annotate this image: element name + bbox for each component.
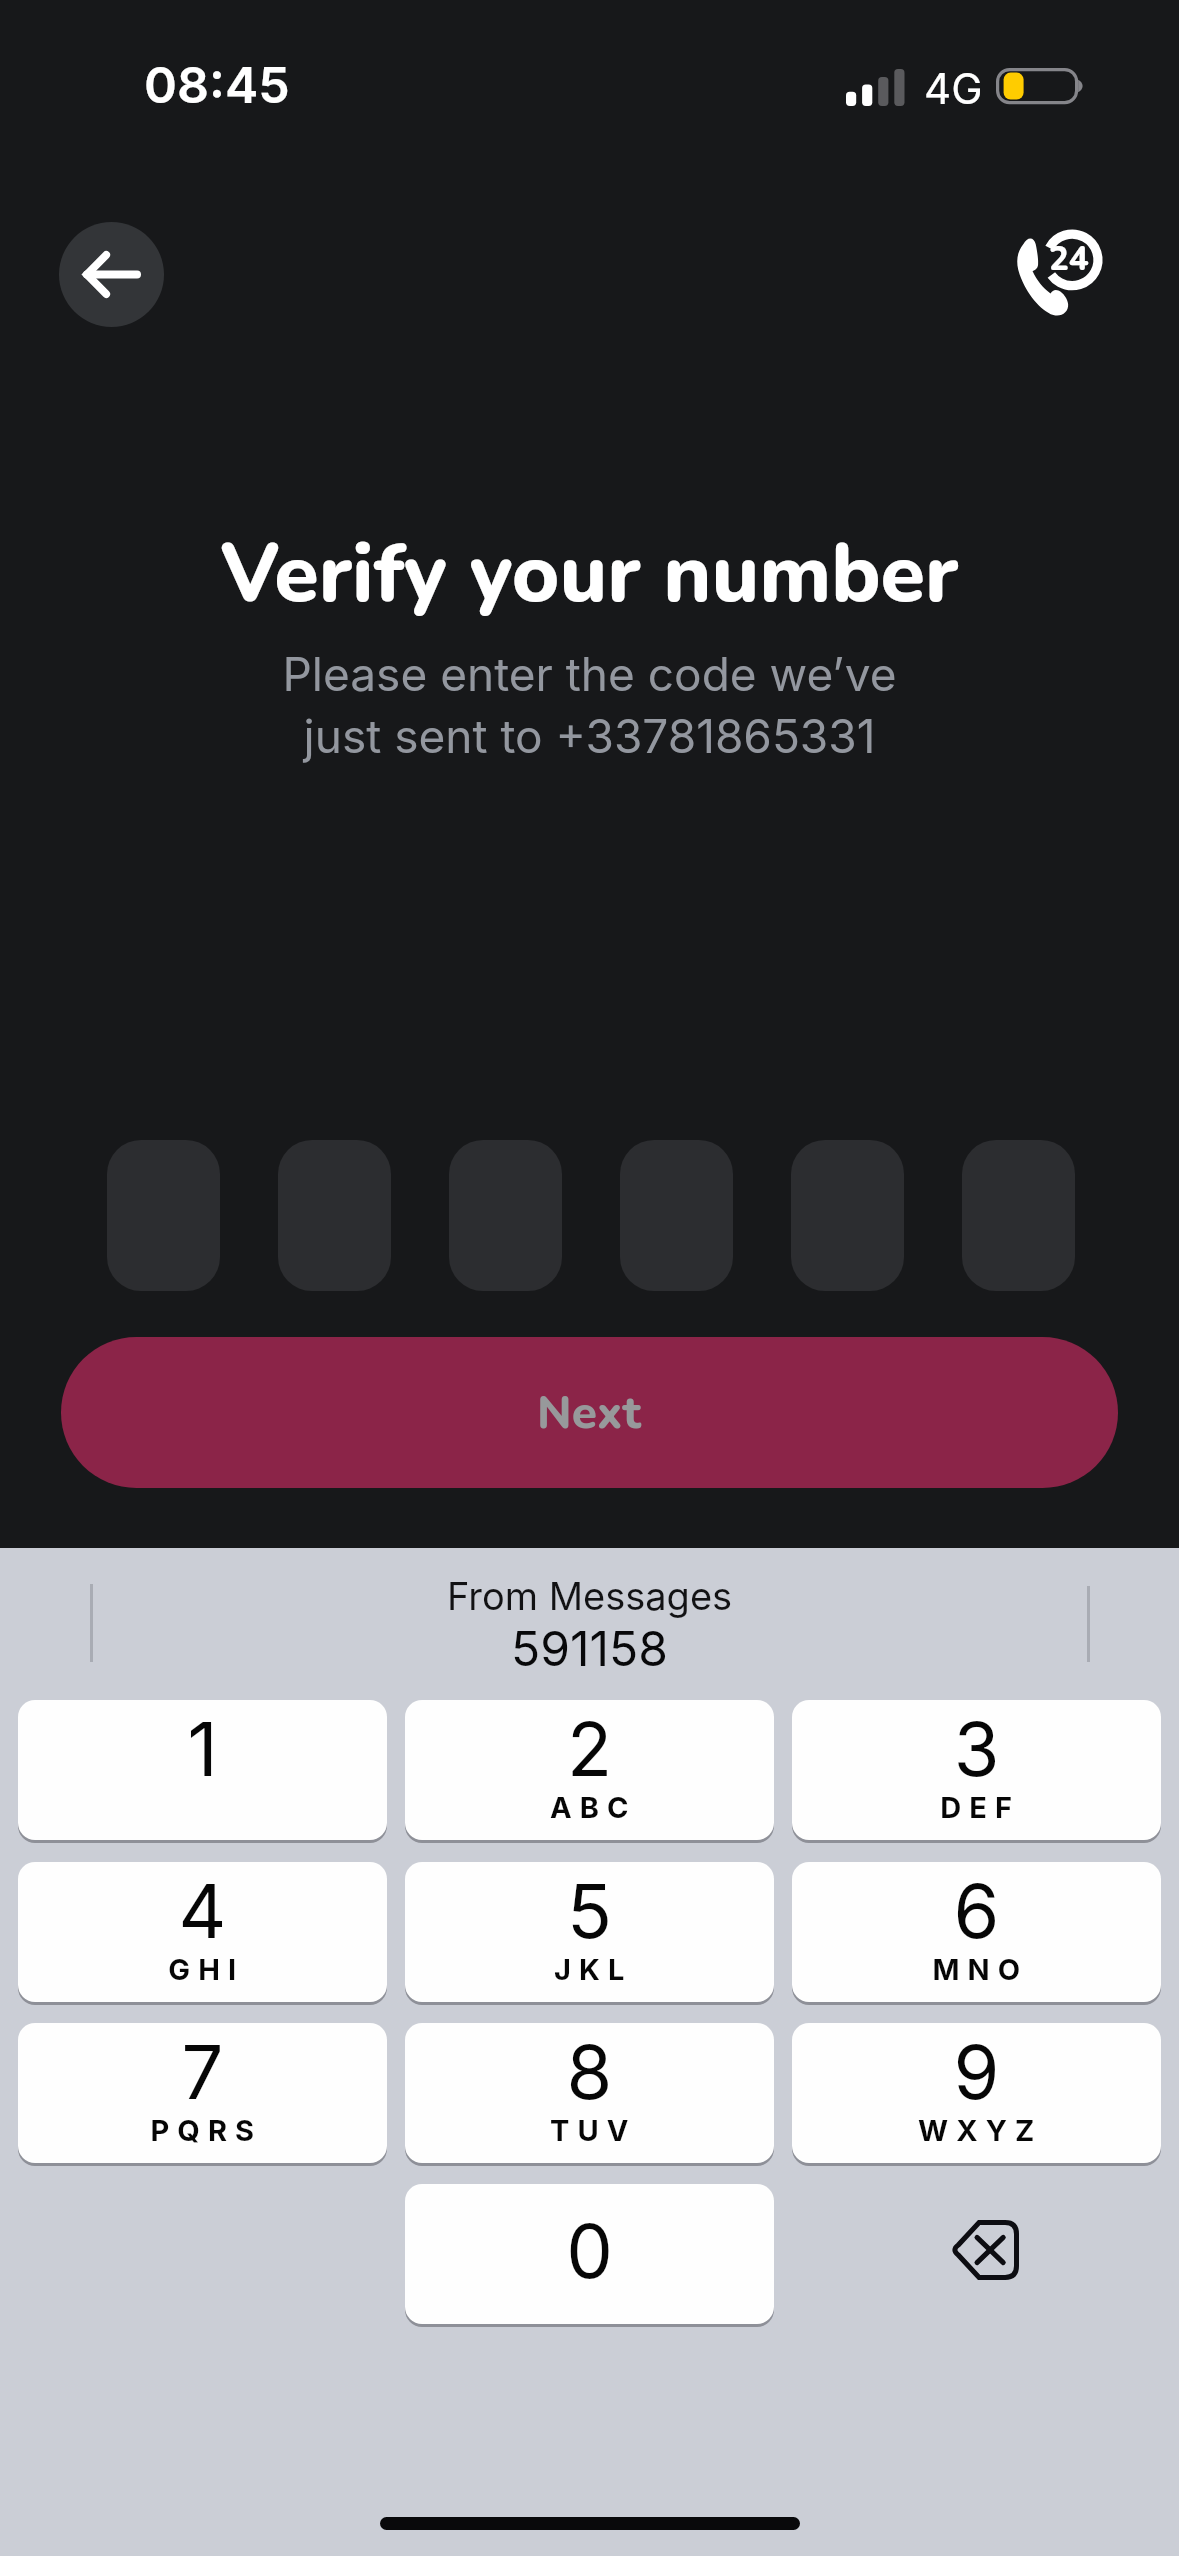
staticText: A B C: [405, 1790, 774, 1825]
button[interactable]: 7: [18, 2023, 387, 2163]
staticText: G H I: [18, 1952, 387, 1987]
button[interactable]: Digit 4: [620, 1140, 733, 1291]
button[interactable]: 0: [405, 2184, 774, 2324]
button[interactable]: 24/7 support: [997, 209, 1117, 329]
staticText: M N O: [792, 1952, 1161, 1987]
staticText: 08:45: [144, 55, 290, 115]
staticText: 7: [18, 2027, 387, 2117]
staticText: 24: [1049, 237, 1089, 282]
staticText: J K L: [405, 1952, 774, 1987]
button[interactable]: 2: [405, 1700, 774, 1840]
staticText: 1: [18, 1704, 387, 1794]
button[interactable]: 4: [18, 1862, 387, 2002]
staticText: 0: [405, 2206, 774, 2296]
button[interactable]: 6: [792, 1862, 1161, 2002]
button[interactable]: Digit 2: [278, 1140, 391, 1291]
button[interactable]: Digit 5: [791, 1140, 904, 1291]
button[interactable]: Digit 3: [449, 1140, 562, 1291]
staticText: 9: [792, 2027, 1161, 2117]
staticText: 8: [405, 2027, 774, 2117]
button[interactable]: 5: [405, 1862, 774, 2002]
button[interactable]: Digit 1: [107, 1140, 220, 1291]
staticText: From Messages: [0, 1573, 1179, 1619]
staticText: 3: [792, 1704, 1161, 1794]
staticText: T U V: [405, 2113, 774, 2148]
staticText: W X Y Z: [792, 2113, 1161, 2148]
staticText: Verify your number: [0, 519, 1179, 629]
button[interactable]: Back: [59, 222, 164, 327]
button[interactable]: 9: [792, 2023, 1161, 2163]
staticText: Next: [537, 1381, 642, 1444]
staticText: Please enter the code we’ve just sent to…: [0, 646, 1179, 764]
button[interactable]: Digit 6: [962, 1140, 1075, 1291]
button[interactable]: Delete: [792, 2184, 1161, 2324]
staticText: 4G: [924, 63, 983, 114]
staticText: 5: [405, 1866, 774, 1956]
staticText: 4: [18, 1866, 387, 1956]
staticText: 2: [405, 1704, 774, 1794]
staticText: 6: [792, 1866, 1161, 1956]
button[interactable]: 1: [18, 1700, 387, 1840]
staticText: 591158: [0, 1619, 1179, 1677]
button[interactable]: 8: [405, 2023, 774, 2163]
button[interactable]: 3: [792, 1700, 1161, 1840]
staticText: P Q R S: [18, 2113, 387, 2148]
button[interactable]: Next: [61, 1337, 1118, 1488]
staticText: D E F: [792, 1790, 1161, 1825]
